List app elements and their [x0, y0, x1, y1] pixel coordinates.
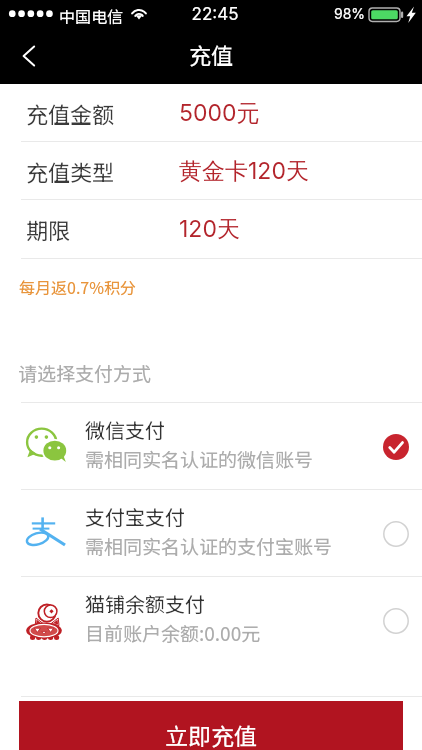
button[interactable]: 充值类型: [0, 142, 422, 200]
staticText: 立即充值: [165, 718, 257, 750]
staticText: 需相同实名认证的微信账号: [85, 445, 314, 473]
staticText: 120天: [179, 215, 240, 244]
button[interactable]: 充值金额: [0, 84, 422, 142]
button[interactable]: 猫铺余额支付: [0, 576, 422, 663]
staticText: 黄金卡120天: [179, 157, 309, 186]
staticText: 中国电信: [59, 4, 124, 27]
staticText: 期限: [26, 213, 71, 245]
staticText: 目前账户余额:0.00元: [85, 619, 261, 647]
staticText: 请选择支付方式: [18, 359, 152, 387]
staticText: 22:45: [4, 4, 422, 25]
staticText: 5000元: [179, 99, 260, 128]
staticText: 充值: [189, 38, 234, 70]
button[interactable]: 立即充值: [19, 701, 403, 750]
staticText: 每月返0.7%积分: [19, 275, 136, 298]
button[interactable]: 支付宝支付: [0, 489, 422, 576]
staticText: 98%: [334, 5, 366, 22]
staticText: 微信支付: [85, 415, 165, 444]
staticText: 猫铺余额支付: [85, 589, 205, 618]
button[interactable]: 期限: [0, 200, 422, 258]
button[interactable]: 微信支付: [0, 402, 422, 489]
button[interactable]: Back: [8, 36, 48, 76]
staticText: 充值类型: [26, 155, 115, 187]
staticText: 需相同实名认证的支付宝账号: [85, 532, 333, 560]
staticText: 充值金额: [26, 97, 115, 129]
staticText: 支付宝支付: [85, 502, 185, 531]
